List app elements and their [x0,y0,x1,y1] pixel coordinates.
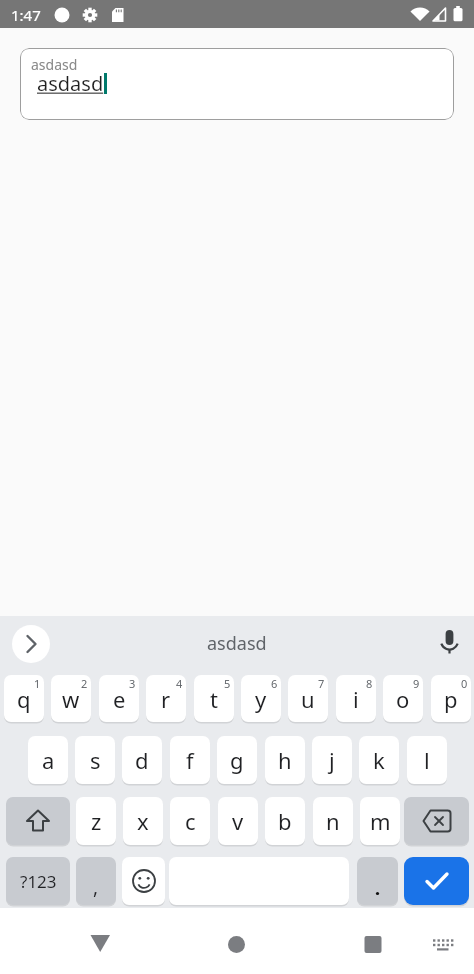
button[interactable]: p [431,675,471,722]
button[interactable]: k [359,736,399,784]
staticText: z [91,806,102,836]
staticText: n [326,806,340,836]
staticText: , [93,874,99,900]
button[interactable]: asdasd [20,48,454,120]
button[interactable]: u [288,675,328,722]
staticText: 0 [461,676,468,691]
staticText: k [373,745,385,775]
staticText: 1:47 [11,5,41,25]
staticText: q [17,684,31,714]
button[interactable] [356,927,390,961]
staticText: o [396,684,410,714]
staticText: 7 [318,676,325,691]
staticText: 9 [413,676,420,691]
staticText: l [424,745,430,775]
button[interactable]: s [75,736,115,784]
button[interactable]: h [265,736,305,784]
button[interactable]: e [99,675,139,722]
button[interactable]: , [76,857,116,905]
staticText: ?123 [20,870,57,893]
button[interactable]: l [407,736,447,784]
button[interactable]: a [28,736,68,784]
button[interactable]: r [146,675,186,722]
button[interactable]: d [122,736,162,784]
staticText: p [444,684,458,714]
button[interactable]: c [170,797,210,845]
button[interactable]: g [217,736,257,784]
button[interactable] [404,797,469,845]
staticText: d [135,745,149,775]
staticText: 3 [129,676,136,691]
button[interactable]: m [360,797,400,845]
staticText: u [301,684,315,714]
staticText: h [278,745,292,775]
button[interactable] [357,857,398,905]
button[interactable]: w [51,675,91,722]
staticText: y [255,684,267,714]
staticText: 6 [271,676,278,691]
button[interactable]: v [218,797,258,845]
button[interactable]: t [194,675,234,722]
staticText: s [90,745,101,775]
staticText: g [230,745,244,775]
button[interactable] [434,628,466,662]
staticText: r [161,684,171,714]
staticText: 4 [176,676,183,691]
button[interactable] [84,927,118,961]
staticText: e [113,684,126,714]
button[interactable]: q [4,675,44,722]
staticText: b [278,806,292,836]
staticText: t [210,684,218,714]
button[interactable] [219,927,253,961]
button[interactable] [6,797,70,845]
button[interactable]: z [76,797,116,845]
button[interactable]: f [170,736,210,784]
button[interactable]: n [313,797,353,845]
button[interactable]: ?123 [6,857,70,905]
button[interactable]: asdasd [170,628,304,658]
button[interactable] [122,857,165,905]
button[interactable]: j [312,736,352,784]
staticText: m [370,806,391,836]
staticText: f [186,745,194,775]
button[interactable]: i [336,675,376,722]
staticText: 2 [81,676,88,691]
staticText: asdasd [31,55,78,74]
button[interactable] [404,857,469,905]
staticText: i [353,684,359,714]
staticText: a [42,745,55,775]
staticText: w [62,684,80,714]
button[interactable] [425,930,459,958]
button[interactable]: x [123,797,163,845]
staticText: 8 [366,676,373,691]
button[interactable] [12,625,50,663]
button[interactable]: b [265,797,305,845]
staticText: asdasd [37,70,104,97]
staticText: 1 [34,676,41,691]
staticText: 5 [224,676,231,691]
button[interactable]: y [241,675,281,722]
staticText: c [185,806,196,836]
staticText: x [137,806,149,836]
staticText: j [329,745,335,775]
staticText: v [232,806,244,836]
button[interactable]: o [383,675,423,722]
staticText: asdasd [207,631,267,656]
